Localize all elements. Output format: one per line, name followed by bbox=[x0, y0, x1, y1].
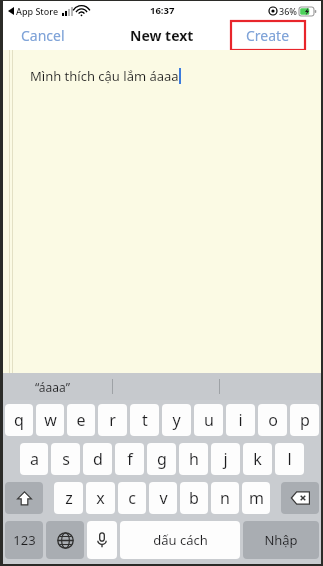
button[interactable]: dấu cách bbox=[120, 521, 240, 559]
staticText: o bbox=[268, 409, 278, 431]
staticText: p bbox=[300, 409, 310, 431]
button[interactable]: u bbox=[194, 404, 223, 436]
staticText: App Store bbox=[16, 5, 59, 17]
button[interactable]: Dictate bbox=[87, 521, 117, 559]
staticText: w bbox=[44, 409, 57, 431]
staticText: v bbox=[159, 487, 168, 509]
staticText: z bbox=[65, 487, 73, 509]
button[interactable]: Shift bbox=[5, 482, 43, 514]
button[interactable]: z bbox=[54, 482, 83, 514]
button[interactable]: t bbox=[130, 404, 159, 436]
button[interactable]: Change keyboard language bbox=[46, 521, 84, 559]
staticText: s bbox=[62, 448, 70, 470]
button[interactable]: h bbox=[179, 443, 208, 475]
button[interactable]: Cancel bbox=[17, 22, 69, 49]
button[interactable]: Create bbox=[231, 21, 305, 50]
button[interactable]: i bbox=[226, 404, 255, 436]
staticText: b bbox=[189, 487, 199, 509]
button[interactable]: r bbox=[98, 404, 127, 436]
button[interactable]: o bbox=[258, 404, 287, 436]
staticText: c bbox=[128, 487, 136, 509]
button[interactable]: b bbox=[180, 482, 208, 514]
button[interactable]: c bbox=[118, 482, 146, 514]
staticText: Cancel bbox=[21, 26, 65, 45]
staticText: New text bbox=[130, 26, 194, 45]
staticText: dấu cách bbox=[153, 531, 208, 549]
staticText: 123 bbox=[13, 531, 36, 549]
button[interactable]: 123 bbox=[5, 521, 43, 559]
staticText: 16:37 bbox=[150, 4, 175, 17]
button[interactable]: g bbox=[147, 443, 176, 475]
staticText: y bbox=[172, 409, 181, 431]
staticText: Create bbox=[246, 26, 290, 45]
staticText: “áaaa” bbox=[35, 379, 70, 395]
staticText: Mình thích cậu lắm áaaa bbox=[30, 67, 179, 85]
staticText: e bbox=[76, 409, 86, 431]
button[interactable]: m bbox=[242, 482, 270, 514]
button[interactable]: e bbox=[67, 404, 95, 436]
button[interactable]: v bbox=[149, 482, 177, 514]
staticText: r bbox=[109, 409, 116, 431]
staticText: u bbox=[204, 409, 214, 431]
button[interactable]: Backspace bbox=[281, 482, 319, 514]
button[interactable]: y bbox=[162, 404, 191, 436]
button[interactable]: w bbox=[36, 404, 64, 436]
button[interactable]: f bbox=[115, 443, 144, 475]
staticText: a bbox=[30, 448, 39, 470]
staticText: x bbox=[96, 487, 105, 509]
button[interactable]: x bbox=[86, 482, 115, 514]
button[interactable]: q bbox=[5, 404, 33, 436]
button[interactable]: Nhập bbox=[243, 521, 319, 559]
staticText: k bbox=[253, 448, 262, 470]
staticText: q bbox=[14, 409, 24, 431]
button[interactable]: l bbox=[275, 443, 304, 475]
button[interactable]: n bbox=[211, 482, 239, 514]
staticText: n bbox=[220, 487, 230, 509]
staticText: g bbox=[157, 448, 167, 470]
staticText: 36% bbox=[279, 5, 297, 17]
button[interactable]: a bbox=[20, 443, 48, 475]
button[interactable]: j bbox=[211, 443, 240, 475]
staticText: d bbox=[93, 448, 103, 470]
staticText: t bbox=[142, 409, 148, 431]
button[interactable]: d bbox=[83, 443, 112, 475]
button[interactable]: k bbox=[243, 443, 272, 475]
button[interactable]: p bbox=[290, 404, 319, 436]
staticText: i bbox=[238, 409, 243, 431]
staticText: Nhập bbox=[264, 531, 298, 549]
staticText: h bbox=[189, 448, 199, 470]
staticText: m bbox=[249, 487, 264, 509]
staticText: j bbox=[223, 448, 228, 470]
staticText: f bbox=[127, 448, 133, 470]
button[interactable]: s bbox=[51, 443, 80, 475]
staticText: l bbox=[287, 448, 292, 470]
